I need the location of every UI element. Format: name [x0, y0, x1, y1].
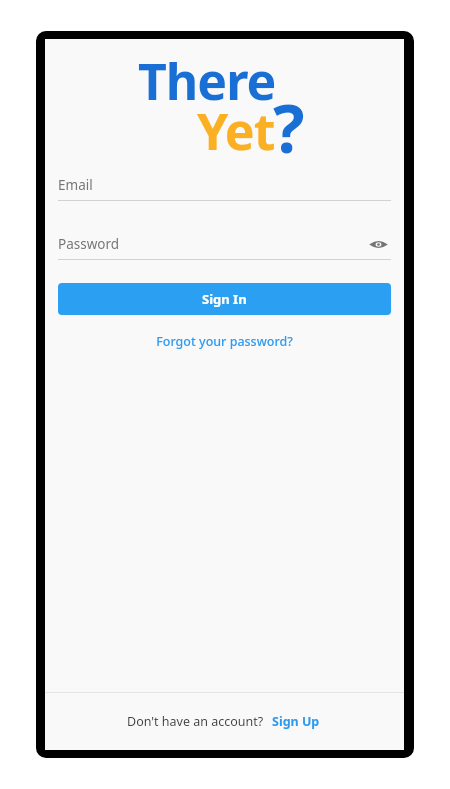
button[interactable]: Forgot your password?	[148, 330, 301, 353]
staticText: Forgot your password?	[156, 333, 293, 350]
staticText: Don't have an account?	[127, 713, 264, 730]
button[interactable]: Show password	[365, 231, 391, 257]
button[interactable]: Sign In	[58, 283, 391, 315]
staticText: Sign In	[202, 290, 247, 308]
staticText: Password	[58, 235, 120, 253]
button[interactable]: Sign Up	[270, 709, 322, 734]
staticText: There	[138, 47, 276, 115]
staticText: Sign Up	[272, 713, 320, 730]
button[interactable]: Email	[58, 169, 391, 201]
staticText: Email	[58, 176, 93, 194]
button[interactable]: Password	[58, 228, 391, 260]
staticText: ?	[273, 82, 304, 172]
staticText: Yet	[197, 97, 275, 165]
